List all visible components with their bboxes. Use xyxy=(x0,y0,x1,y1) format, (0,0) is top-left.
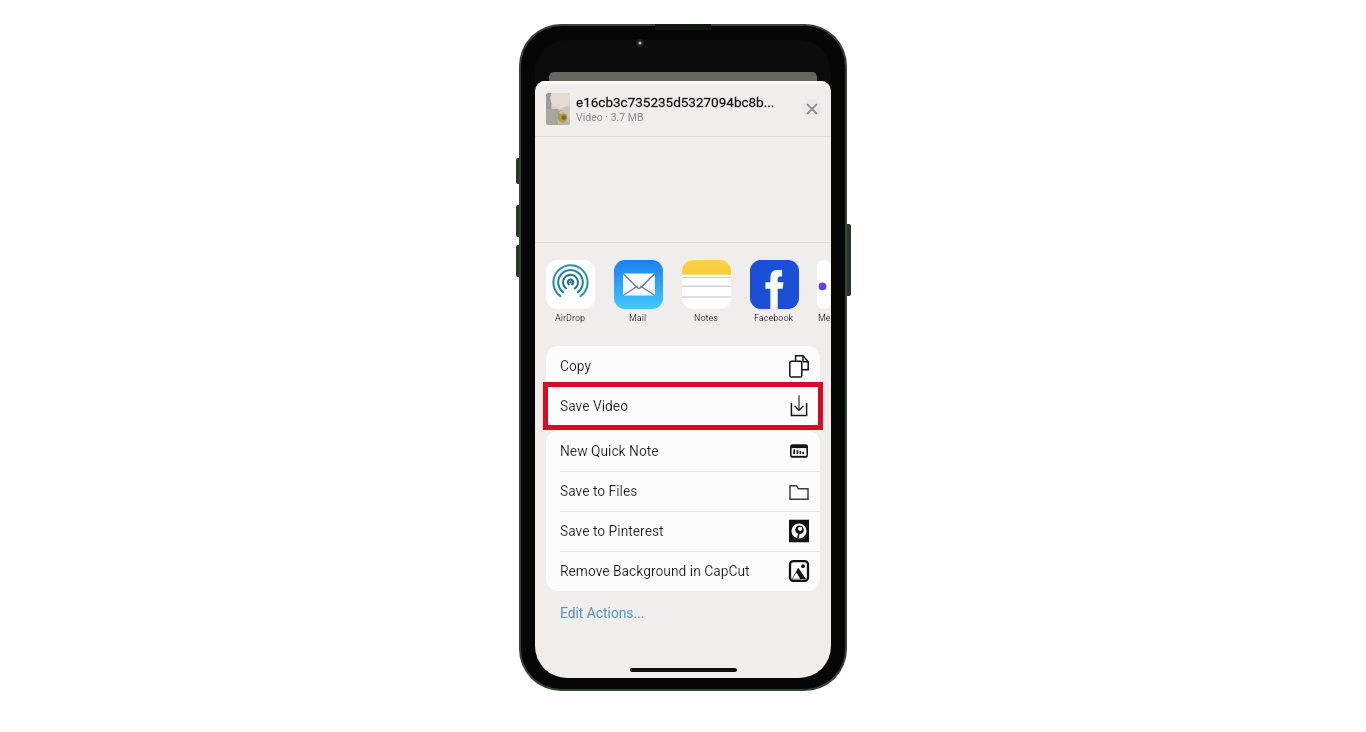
button[interactable]: Close xyxy=(802,99,822,119)
button[interactable]: Save to Files xyxy=(546,471,820,511)
staticText: Notes xyxy=(694,313,718,324)
button[interactable]: Save to Pinterest xyxy=(546,511,820,551)
button[interactable]: Edit Actions... xyxy=(546,591,820,635)
button[interactable]: New Quick Note xyxy=(546,431,820,471)
staticText: Save to Files xyxy=(560,483,638,499)
staticText: e16cb3c735235d5327094bc8b... xyxy=(576,94,775,110)
button[interactable]: Save Video xyxy=(546,386,820,426)
button[interactable]: Me xyxy=(817,260,831,324)
staticText: Copy xyxy=(560,358,592,374)
staticText: Mail xyxy=(629,313,647,324)
button[interactable]: Remove Background in CapCut xyxy=(546,551,820,591)
staticText: New Quick Note xyxy=(560,443,659,459)
staticText: Facebook xyxy=(754,313,794,324)
staticText: Me xyxy=(818,313,831,324)
button[interactable]: Mail xyxy=(613,260,663,324)
staticText: Remove Background in CapCut xyxy=(560,563,750,579)
button[interactable]: Facebook xyxy=(749,260,799,324)
staticText: Video · 3.7 MB xyxy=(576,111,644,123)
staticText: Save Video xyxy=(560,398,629,414)
staticText: Edit Actions... xyxy=(560,605,645,621)
button[interactable]: AirDrop xyxy=(545,260,595,324)
button[interactable]: Copy xyxy=(546,346,820,386)
button[interactable]: Notes xyxy=(681,260,731,324)
staticText: AirDrop xyxy=(555,313,586,324)
staticText: Save to Pinterest xyxy=(560,523,664,539)
